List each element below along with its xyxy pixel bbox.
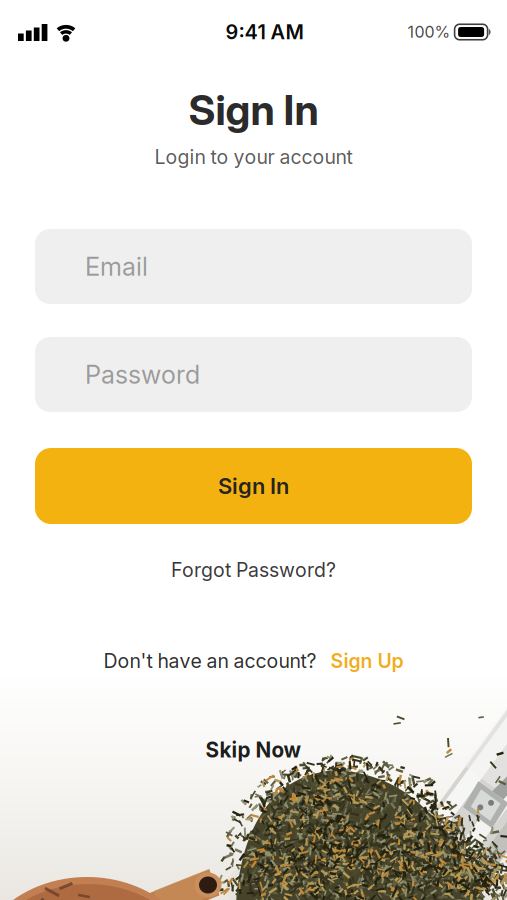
staticText: Sign Up xyxy=(330,649,403,673)
button[interactable]: Email xyxy=(35,229,472,304)
staticText: Don't have an account? xyxy=(103,649,316,673)
button[interactable]: Sign Up xyxy=(330,649,403,673)
staticText: Login to your account xyxy=(154,145,352,169)
button[interactable]: Forgot Password? xyxy=(0,555,507,585)
staticText: Forgot Password? xyxy=(171,558,336,582)
staticText: Sign In xyxy=(188,85,318,135)
button[interactable]: Password xyxy=(35,337,472,412)
staticText: Email xyxy=(85,251,148,282)
staticText: Password xyxy=(85,359,200,390)
staticText: Sign In xyxy=(218,473,289,499)
staticText: Skip Now xyxy=(205,737,301,762)
staticText: 100% xyxy=(408,22,451,42)
button[interactable]: Skip Now xyxy=(0,735,507,765)
button[interactable]: Sign In xyxy=(35,448,472,524)
staticText: 9:41 AM xyxy=(225,20,303,44)
